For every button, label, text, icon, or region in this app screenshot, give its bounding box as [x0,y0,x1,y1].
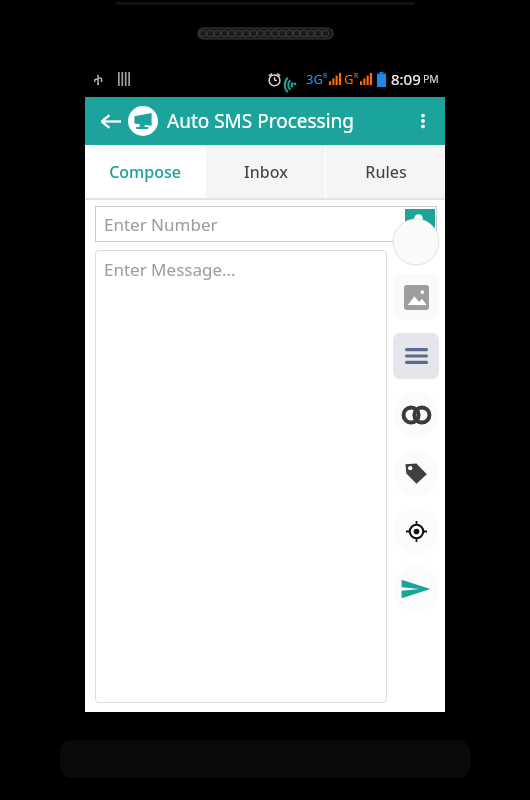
button[interactable]: Insert tag [393,450,439,496]
button[interactable]: Navigate up [93,104,127,138]
button[interactable]: Compose [85,145,205,198]
button[interactable]: Inbox [206,145,325,198]
staticText: Auto SMS Processing [167,108,355,134]
button[interactable]: Insert location [393,508,439,554]
staticText: G [344,70,354,88]
button[interactable]: Insert link [393,392,439,438]
staticText: Compose [109,161,181,183]
button[interactable]: Pick contact [405,209,435,239]
button[interactable]: Insert image [393,274,439,320]
button[interactable]: Templates [393,333,439,379]
staticText: PM [423,72,439,86]
button[interactable]: Enter Message... [95,250,387,703]
staticText: R [354,71,359,81]
staticText: Enter Number [104,213,218,236]
staticText: Inbox [244,161,288,183]
staticText: 8:09 [391,69,421,89]
button[interactable]: Send [393,566,439,612]
staticText: 3G [306,70,323,88]
staticText: Rules [365,161,407,183]
button[interactable]: Rules [326,145,445,198]
staticText: Enter Message... [104,258,236,281]
button[interactable]: More options [401,99,445,143]
button[interactable]: Attach [393,250,439,265]
staticText: R [323,71,328,81]
